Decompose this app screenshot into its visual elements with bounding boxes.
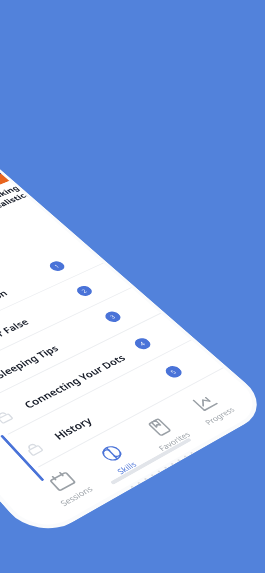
other: Skills	[96, 441, 128, 465]
staticText: Skills	[114, 459, 139, 476]
button[interactable]: Skills	[80, 433, 154, 486]
staticText: History	[51, 414, 95, 442]
staticText: Progress	[202, 404, 237, 427]
staticText: Favorites	[156, 429, 193, 453]
staticText: 5	[168, 368, 179, 376]
button[interactable]: Sessions	[29, 459, 105, 514]
button[interactable]: Fact or Fiction	[0, 240, 104, 364]
other: Favorites	[144, 416, 175, 439]
staticText: Fact or Fiction	[0, 287, 10, 325]
staticText: Sessions	[57, 483, 95, 508]
staticText: Connecting Your Dots	[21, 351, 129, 411]
staticText: True or False	[0, 316, 32, 352]
button[interactable]: Sleeping Tips	[0, 288, 161, 424]
staticText: Thinking	[0, 184, 21, 205]
other: Progress	[190, 391, 221, 413]
staticText: 3	[108, 313, 118, 321]
button[interactable]: Favorites	[129, 408, 201, 458]
button[interactable]: History	[0, 340, 224, 490]
button[interactable]: Connecting Your Dots	[0, 313, 192, 456]
staticText: Sleeping Tips	[0, 342, 62, 381]
button[interactable]: Thinking	[0, 163, 29, 212]
button[interactable]: True or False	[0, 263, 132, 393]
other: Sessions	[46, 468, 78, 493]
staticText: Realistically	[0, 191, 29, 212]
button[interactable]: Progress	[175, 383, 246, 432]
staticText: 1	[52, 263, 62, 270]
staticText: 4	[138, 340, 148, 348]
staticText: 2	[80, 287, 90, 295]
